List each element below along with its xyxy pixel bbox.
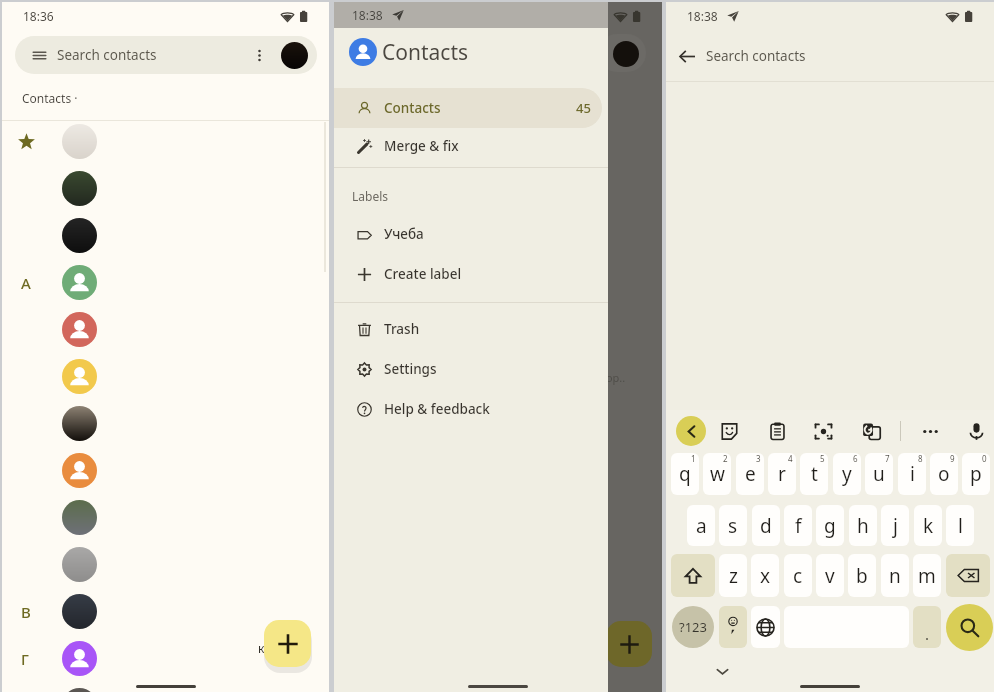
button[interactable] [2,682,329,692]
button[interactable]: Search contacts [15,36,317,74]
button[interactable] [2,118,329,165]
button[interactable]: h [849,505,877,546]
button[interactable]: k [914,505,942,546]
button[interactable]: Period [913,606,941,648]
button[interactable] [2,212,329,259]
staticText: Contacts · [22,90,78,106]
staticText: t [811,461,818,487]
button[interactable]: u [865,453,893,495]
button[interactable]: e [736,453,764,495]
staticText: 18:36 [23,8,54,24]
button[interactable] [2,306,329,353]
button[interactable]: Help & feedback [334,389,602,429]
button[interactable]: Stickers [718,420,740,442]
staticText: 0 [982,453,987,464]
staticText: A [21,273,31,293]
staticText: e [745,461,756,487]
staticText: 18:38 [352,7,383,23]
staticText: m [918,563,936,589]
button[interactable]: v [816,554,844,597]
staticText: p [970,461,982,487]
button[interactable]: Back [674,43,700,69]
staticText: y [842,461,852,487]
staticText: Г [21,649,29,669]
button[interactable]: c [784,554,812,597]
button[interactable]: Translate [860,420,882,442]
button[interactable]: Create contact [264,620,311,667]
staticText: 2 [723,453,728,464]
button[interactable]: f [784,505,812,546]
button[interactable]: Shift [671,554,715,597]
staticText: Contacts [382,38,469,67]
button[interactable]: Create label [334,254,602,294]
button[interactable]: d [752,505,780,546]
button[interactable] [2,165,329,212]
button[interactable]: Учеба [334,214,602,254]
button[interactable]: n [881,554,909,597]
staticText: Merge & fix [384,137,459,155]
staticText: 4 [788,453,793,464]
button[interactable]: q [671,453,699,495]
staticText: f [795,513,802,539]
button[interactable] [2,494,329,541]
staticText: 45 [576,99,591,117]
button[interactable] [2,353,329,400]
button[interactable]: A [2,259,329,306]
button[interactable]: z [719,554,747,597]
staticText: 5 [820,453,825,464]
button[interactable]: Change language [751,606,780,648]
button[interactable]: p [962,453,990,495]
button[interactable]: r [768,453,796,495]
button[interactable]: Merge & fix [334,126,602,166]
staticText: h [857,513,869,539]
button[interactable]: j [881,505,909,546]
button[interactable]: Lens [812,420,834,442]
button[interactable] [2,447,329,494]
button[interactable]: b [848,554,876,597]
staticText: b [856,563,868,589]
button[interactable]: Emoji [719,606,747,648]
staticText: 18:38 [687,8,718,24]
button[interactable]: y [833,453,861,495]
staticText: o [938,461,950,487]
staticText: к [258,640,265,656]
button[interactable]: В [2,588,329,635]
button[interactable]: Trash [334,309,602,349]
button[interactable]: m [913,554,941,597]
button[interactable]: i [898,453,926,495]
staticText: Labels [352,188,389,204]
button[interactable]: a [687,505,715,546]
staticText: z [729,563,738,589]
button[interactable]: Settings [334,349,602,389]
button[interactable]: Previous [676,416,706,446]
staticText: r [778,461,786,487]
button[interactable]: ?123 [672,606,714,648]
button[interactable]: w [703,453,731,495]
button[interactable]: s [719,505,747,546]
staticText: 3 [756,453,761,464]
staticText: 9 [950,453,955,464]
staticText: c [793,563,803,589]
button[interactable]: Г [2,635,329,682]
staticText: u [873,461,885,487]
button[interactable]: x [751,554,779,597]
button[interactable]: Contacts [334,88,602,128]
button[interactable]: t [800,453,828,495]
staticText: w [710,461,725,487]
button[interactable]: l [946,505,974,546]
button[interactable] [2,400,329,447]
button[interactable]: o [930,453,958,495]
staticText: 1 [691,453,696,464]
button[interactable]: Clipboard [766,420,788,442]
staticText: q [679,461,691,487]
staticText: d [760,513,772,539]
button[interactable]: g [816,505,844,546]
button[interactable] [2,541,329,588]
button[interactable]: Search [946,604,993,651]
button[interactable]: Voice input [965,420,987,442]
button[interactable]: Backspace [946,554,990,597]
staticText: j [893,513,898,539]
button[interactable]: More options [919,420,941,442]
button[interactable]: Hide keyboard [713,662,731,680]
